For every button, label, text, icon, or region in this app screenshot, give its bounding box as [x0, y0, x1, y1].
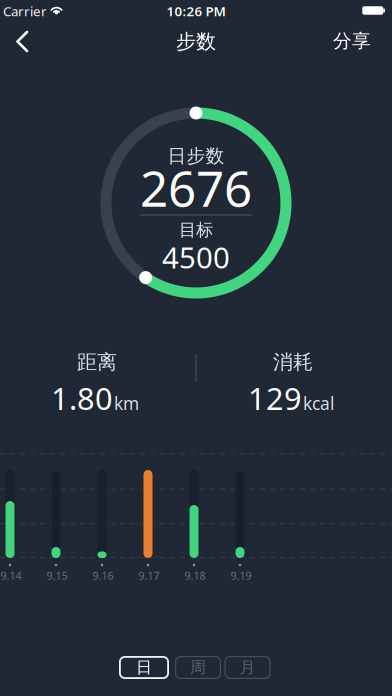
- button[interactable]: 日: [119, 656, 169, 679]
- staticText: 9.19: [230, 568, 251, 583]
- button[interactable]: 分享: [322, 21, 382, 61]
- staticText: 10:26 PM: [166, 2, 225, 20]
- staticText: 周: [190, 658, 206, 677]
- staticText: Carrier: [3, 2, 47, 20]
- staticText: 日步数: [167, 144, 224, 167]
- staticText: 距离: [77, 350, 117, 374]
- staticText: 消耗: [273, 350, 313, 374]
- staticText: 2676: [140, 155, 252, 220]
- staticText: 1.80: [51, 378, 113, 418]
- staticText: 分享: [333, 29, 371, 52]
- staticText: 9.17: [138, 568, 159, 583]
- staticText: 9.15: [46, 568, 67, 583]
- button[interactable]: 月: [224, 656, 270, 679]
- staticText: 月: [239, 658, 255, 677]
- staticText: 目标: [179, 219, 213, 241]
- staticText: 9.16: [92, 568, 113, 583]
- staticText: 9.18: [184, 568, 205, 583]
- button[interactable]: Back: [0, 21, 44, 61]
- staticText: 4500: [162, 237, 230, 276]
- staticText: 日: [136, 658, 152, 677]
- staticText: 9.14: [0, 568, 21, 583]
- staticText: kcal: [303, 392, 334, 415]
- staticText: 129: [248, 378, 302, 418]
- button[interactable]: 周: [175, 656, 221, 679]
- staticText: 步数: [176, 29, 216, 54]
- staticText: km: [114, 392, 139, 415]
